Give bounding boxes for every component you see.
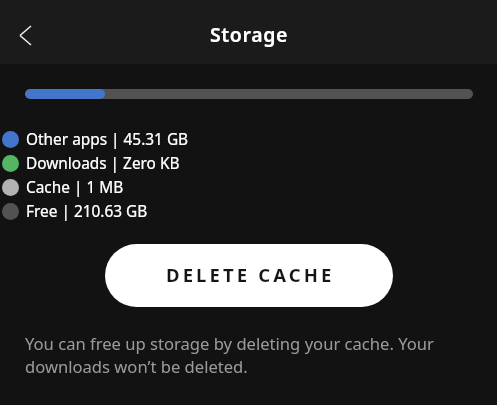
staticText: Cache | 1 MB (26, 177, 124, 198)
staticText: Other apps | 45.31 GB (26, 129, 189, 150)
staticText: DELETE CACHE (166, 262, 335, 287)
staticText: Free | 210.63 GB (26, 201, 148, 222)
staticText: Storage (210, 21, 288, 48)
button[interactable]: Back (2, 11, 50, 59)
staticText: Downloads | Zero KB (26, 153, 180, 174)
button[interactable]: DELETE CACHE (105, 244, 393, 307)
staticText: You can free up storage by deleting your… (25, 332, 472, 378)
